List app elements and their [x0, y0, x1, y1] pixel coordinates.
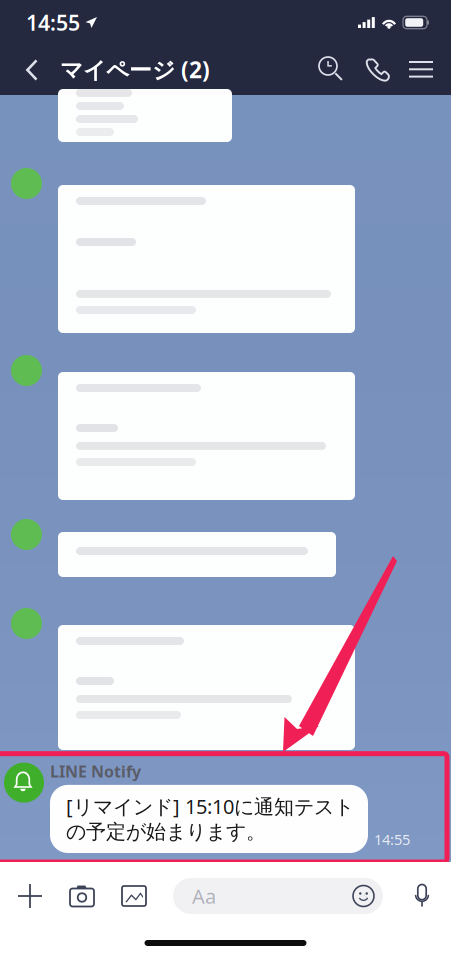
staticText: 14:55: [26, 8, 80, 37]
button[interactable]: Menu: [399, 44, 451, 94]
button[interactable]: Back: [0, 44, 60, 94]
button[interactable]: Voice message: [399, 862, 451, 930]
staticText: 14:55: [374, 829, 410, 849]
button[interactable]: Search messages: [309, 44, 354, 94]
button[interactable]: Call: [354, 44, 399, 94]
button[interactable]: Camera: [56, 862, 108, 930]
button[interactable]: Photo library: [108, 862, 160, 930]
staticText: [リマインド] 15:10に通知テスト の予定が始まります。: [66, 793, 354, 844]
staticText: LINE Notify: [50, 761, 141, 782]
button[interactable]: Add attachment: [0, 862, 56, 930]
button[interactable]: Message field: [160, 878, 383, 914]
staticText: マイページ (2): [60, 54, 210, 84]
staticText: Aa: [192, 883, 216, 909]
